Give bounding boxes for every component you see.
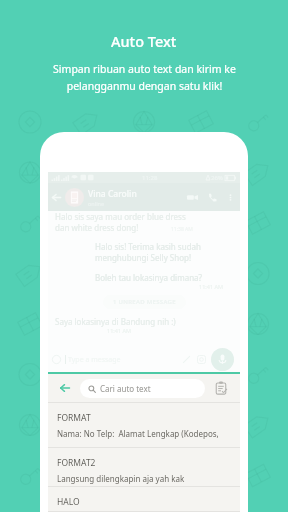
- staticText: Vina Carolin: [88, 188, 137, 200]
- button[interactable]: Call: [207, 192, 218, 203]
- staticText: Type a message: [68, 355, 121, 365]
- staticText: FORMAT2: [57, 457, 96, 469]
- button[interactable]: Back: [56, 379, 74, 397]
- staticText: Halo sis! Terima kasih sudah: [95, 241, 201, 252]
- staticText: Cari auto text: [100, 383, 151, 394]
- staticText: Halo sis saya mau order blue dress: [55, 211, 186, 222]
- staticText: 11:41 AM: [199, 283, 223, 290]
- staticText: HALO: [57, 496, 80, 508]
- button[interactable]: Video call: [187, 192, 198, 203]
- staticText: 1 UNREAD MESSAGE: [113, 298, 176, 306]
- staticText: 11:38 AM: [171, 226, 193, 233]
- staticText: FORMAT: [57, 412, 91, 424]
- staticText: menghubungi Selly Shop!: [95, 252, 192, 263]
- staticText: Auto Text: [111, 31, 177, 51]
- button[interactable]: FORMAT2: [48, 448, 240, 487]
- staticText: Boleh tau lokasinya dimana?: [95, 272, 203, 283]
- button[interactable]: More options: [226, 193, 235, 202]
- staticText: Nama: No Telp: Alamat Lengkap (Kodepos, …: [57, 428, 235, 439]
- staticText: online: [88, 200, 105, 207]
- button[interactable]: FORMAT: [48, 403, 240, 448]
- button[interactable]: Cari auto text: [80, 379, 205, 398]
- staticText: 11:41 AM: [107, 327, 131, 334]
- button[interactable]: Templates: [214, 381, 228, 395]
- staticText: Saya lokasinya di Bandung nih :): [55, 316, 176, 327]
- button[interactable]: Vina Carolin: [48, 183, 240, 211]
- button[interactable]: HALO: [48, 487, 240, 512]
- staticText: Langsung dilengkapin aja yah kak: [57, 473, 185, 484]
- staticText: dan white dress dong!: [55, 222, 139, 233]
- staticText: Simpan ribuan auto text dan kirim ke pel…: [53, 62, 236, 93]
